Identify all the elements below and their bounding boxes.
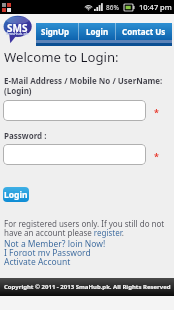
staticText: SMS — [7, 21, 28, 35]
staticText: * — [154, 150, 159, 162]
staticText: Login — [86, 26, 109, 37]
staticText: Login — [4, 189, 28, 201]
button[interactable]: SignUp — [36, 23, 78, 40]
staticText: 10:47 pm — [139, 2, 172, 12]
button[interactable]: Login — [79, 23, 115, 40]
staticText: I Forgot my Password — [4, 247, 91, 256]
staticText: Copyright © 2011 - 2013 SmaHub.pk. All R… — [4, 283, 171, 291]
staticText: (Login) — [4, 85, 32, 96]
staticText: For registered users only. If you still … — [4, 218, 165, 239]
staticText: Activate Account — [4, 256, 71, 265]
staticText: Contact Us — [122, 26, 166, 37]
staticText: SmsHub.pk — [6, 31, 29, 36]
button[interactable] — [3, 100, 146, 121]
button[interactable]: SmsHub home — [3, 15, 32, 44]
staticText: * — [154, 106, 159, 118]
staticText: 86% — [106, 3, 119, 12]
button[interactable] — [3, 144, 146, 165]
button[interactable]: Activate Account — [0, 256, 174, 265]
button[interactable]: I Forgot my Password — [0, 247, 174, 256]
button[interactable]: Login — [3, 187, 29, 202]
button[interactable]: Contact Us — [116, 23, 172, 40]
staticText: Password : — [4, 130, 47, 141]
staticText: Welcome to Login: — [4, 48, 119, 66]
staticText: E-Mail Address / Mobile No / UserName: — [4, 75, 163, 86]
button[interactable]: Not a Member? Join Now! — [0, 238, 174, 247]
staticText: Not a Member? Join Now! — [4, 238, 106, 247]
staticText: SignUp — [41, 26, 70, 37]
